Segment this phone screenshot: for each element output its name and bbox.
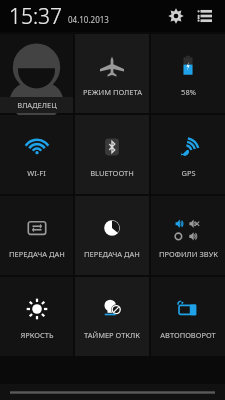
button[interactable]: ПЕРЕДАЧА ДАН (0, 196, 73, 275)
staticText: 58% (181, 87, 196, 97)
staticText: ПЕРЕДАЧА ДАН (84, 249, 140, 259)
button[interactable]: 58% (151, 34, 225, 113)
button[interactable]: Close panel (0, 384, 225, 400)
button[interactable]: Settings (163, 3, 189, 29)
button[interactable]: ТАЙМЕР ОТКЛК (75, 277, 149, 356)
staticText: ТАЙМЕР ОТКЛК (84, 330, 140, 340)
button[interactable]: ЯРКОСТЬ (0, 277, 73, 356)
staticText: ЯРКОСТЬ (20, 330, 54, 340)
button[interactable]: List (191, 3, 217, 29)
button[interactable]: ПРОФИЛИ ЗВУК (151, 196, 225, 275)
staticText: WI-FI (27, 168, 46, 178)
staticText: РЕЖИМ ПОЛЕТА (83, 87, 142, 97)
staticText: BLUETOOTH (90, 168, 134, 178)
staticText: 15:37 (9, 2, 63, 31)
button[interactable]: ПЕРЕДАЧА ДАН (75, 196, 149, 275)
staticText: АВТОПОВОРОТ (160, 330, 216, 340)
button[interactable]: GPS (151, 115, 225, 194)
button[interactable]: BLUETOOTH (75, 115, 149, 194)
staticText: ПРОФИЛИ ЗВУК (159, 249, 218, 259)
button[interactable]: РЕЖИМ ПОЛЕТА (75, 34, 149, 113)
button[interactable]: WI-FI (0, 115, 73, 194)
button[interactable]: АВТОПОВОРОТ (151, 277, 225, 356)
button[interactable]: ВЛАДЕЛЕЦ (0, 34, 73, 113)
staticText: ПЕРЕДАЧА ДАН (9, 249, 65, 259)
staticText: 04.10.2013 (68, 14, 109, 25)
staticText: GPS (181, 168, 196, 178)
staticText: ВЛАДЕЛЕЦ (17, 100, 57, 110)
